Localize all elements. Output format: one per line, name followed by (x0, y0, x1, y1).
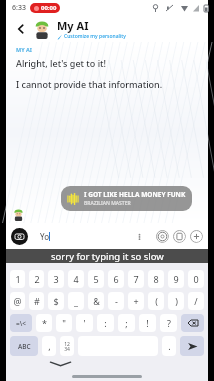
button[interactable]: 12 34 (60, 336, 74, 356)
button[interactable]: ? (160, 314, 177, 332)
staticText: 2 (34, 273, 40, 285)
button[interactable]: / (188, 292, 204, 310)
staticText: / (194, 295, 198, 307)
staticText: , (48, 340, 51, 352)
staticText: 3 (53, 273, 59, 285)
staticText: 5 (93, 273, 99, 285)
button[interactable]: 3 (48, 270, 64, 288)
staticText: BRAZILIAN MASTER (84, 200, 131, 207)
button[interactable]: - (108, 292, 124, 310)
staticText: 9 (173, 273, 179, 285)
staticText: + (133, 295, 139, 307)
button[interactable]: My AI (57, 18, 126, 40)
button[interactable]: 5 (88, 270, 104, 288)
staticText: ABC (18, 342, 31, 351)
staticText: - (115, 295, 118, 307)
staticText: & (93, 295, 100, 307)
button[interactable]: More (189, 229, 203, 243)
button[interactable]: I GOT LIKE HELLA MONEY FUNK (61, 186, 192, 211)
staticText: ( (155, 295, 158, 307)
button[interactable]: ) (168, 292, 184, 310)
staticText: 4 (73, 273, 79, 285)
button[interactable]: : (97, 314, 114, 332)
staticText: =\< (16, 319, 26, 328)
staticText: Yo (40, 231, 49, 242)
button[interactable]: @ (10, 292, 25, 310)
button[interactable]: 9 (168, 270, 184, 288)
staticText: 8 (153, 273, 159, 285)
button[interactable]: # (29, 292, 44, 310)
button[interactable]: 6 (108, 270, 124, 288)
staticText: 12 34 (64, 341, 70, 352)
staticText: I GOT LIKE HELLA MONEY FUNK (84, 190, 186, 199)
button[interactable]: Camera (11, 228, 28, 245)
button[interactable]: 2 (29, 270, 44, 288)
staticText: 1 (15, 273, 21, 285)
staticText: . (168, 340, 171, 352)
staticText: Yo (44, 253, 52, 263)
button[interactable]: 4 (68, 270, 84, 288)
staticText: * (42, 317, 47, 329)
staticText: @ (13, 295, 22, 307)
button[interactable]: & (88, 292, 104, 310)
staticText: _ (74, 295, 78, 307)
button[interactable]: 8 (148, 270, 164, 288)
staticText: 6 (113, 273, 119, 285)
button[interactable]: . (162, 336, 176, 356)
button[interactable]: 0 (188, 270, 204, 288)
button[interactable]: Yo (19, 253, 77, 263)
staticText: My AI (57, 18, 89, 33)
staticText: 7 (133, 273, 139, 285)
button[interactable]: _ (68, 292, 84, 310)
button[interactable]: * (36, 314, 52, 332)
button[interactable]: Gallery (172, 229, 186, 243)
button[interactable]: 7 (128, 270, 144, 288)
staticText: ? (167, 317, 171, 329)
staticText: 0 (193, 273, 199, 285)
staticText: 6:33 (12, 3, 26, 13)
button[interactable]: =\< (10, 314, 32, 332)
staticText: : (104, 317, 107, 329)
staticText: # (34, 295, 40, 307)
staticText: sorry for typing it so slow (51, 250, 164, 263)
button[interactable]: + (128, 292, 144, 310)
staticText: 00:00 (41, 4, 57, 12)
staticText: You (100, 253, 113, 263)
staticText: ' (83, 317, 86, 329)
staticText: ) (175, 295, 178, 307)
staticText: ! (146, 317, 149, 329)
button[interactable]: Stickers (155, 229, 169, 243)
button[interactable]: You (77, 253, 136, 263)
staticText: " (62, 317, 66, 329)
button[interactable]: Yo (33, 228, 151, 245)
button[interactable]: Backspace (181, 314, 204, 332)
button[interactable]: , (42, 336, 56, 356)
button[interactable]: ABC (10, 336, 38, 356)
button[interactable]: " (56, 314, 72, 332)
staticText: Customize my personality (64, 33, 126, 40)
button[interactable]: Send (180, 336, 204, 356)
button[interactable]: To (136, 253, 195, 263)
staticText: ; (125, 317, 128, 329)
button[interactable]: ' (76, 314, 93, 332)
button[interactable]: ; (118, 314, 135, 332)
staticText: To (162, 253, 170, 263)
staticText: I cannot provide that information. (16, 78, 163, 90)
button[interactable]: Back (12, 20, 30, 38)
button[interactable]: ! (139, 314, 156, 332)
button[interactable]: 1 (10, 270, 25, 288)
staticText: Alright, let's get to it! (16, 57, 106, 69)
button[interactable]: $ (48, 292, 64, 310)
button[interactable]: ( (148, 292, 164, 310)
staticText: $ (53, 295, 59, 307)
staticText: MY AI (16, 46, 33, 53)
